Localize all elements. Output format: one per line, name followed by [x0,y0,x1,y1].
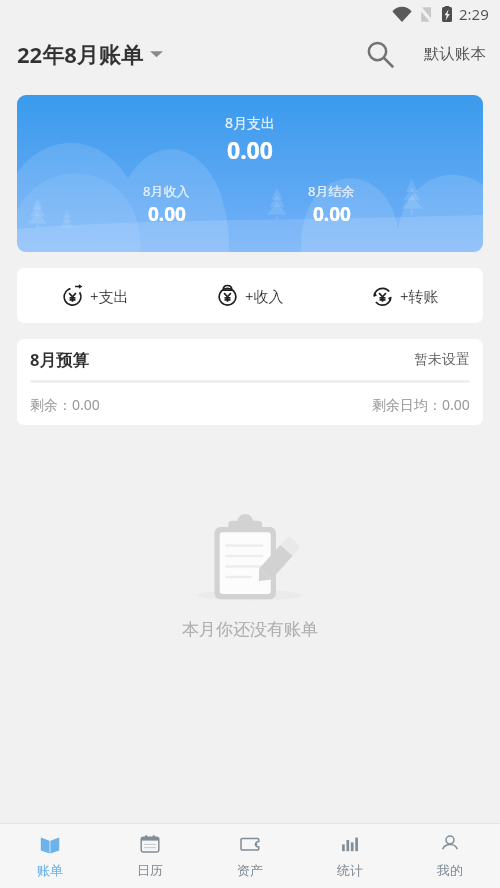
staticText: 本月你还没有账单 [182,619,318,640]
staticText: +支出 [90,286,129,306]
staticText: 0.00 [148,201,186,227]
staticText: +收入 [245,286,284,306]
staticText: 暂未设置 [414,351,470,369]
button[interactable]: 账单 [0,824,100,888]
staticText: 账单 [37,862,63,878]
staticText: 剩余：0.00 [30,395,100,414]
staticText: 8月收入 [143,182,190,200]
button[interactable]: 8月预算 [17,339,483,425]
staticText: 默认账本 [424,44,486,64]
button[interactable]: +转账 [328,268,483,323]
staticText: 资产 [237,862,263,878]
button[interactable]: 默认账本 [424,36,486,72]
button[interactable]: 我的 [400,824,500,888]
staticText: 8月支出 [225,113,276,132]
button[interactable]: 8月支出 [17,95,483,252]
staticText: 22年8月账单 [17,39,143,69]
staticText: 我的 [437,862,463,878]
staticText: 0.00 [313,201,351,227]
button[interactable]: Search [360,34,400,74]
staticText: 统计 [337,862,363,878]
button[interactable]: 日历 [100,824,200,888]
staticText: +转账 [400,286,439,306]
button[interactable]: 统计 [300,824,400,888]
button[interactable]: 资产 [200,824,300,888]
staticText: 8月结余 [308,182,355,200]
staticText: 日历 [137,862,163,878]
staticText: 2:29 [459,4,489,24]
staticText: 8月预算 [30,348,89,371]
button[interactable]: +收入 [173,268,328,323]
button[interactable]: 22年8月账单 [17,39,163,69]
staticText: 剩余日均：0.00 [372,395,470,414]
button[interactable]: +支出 [17,268,173,323]
staticText: 0.00 [227,134,273,165]
